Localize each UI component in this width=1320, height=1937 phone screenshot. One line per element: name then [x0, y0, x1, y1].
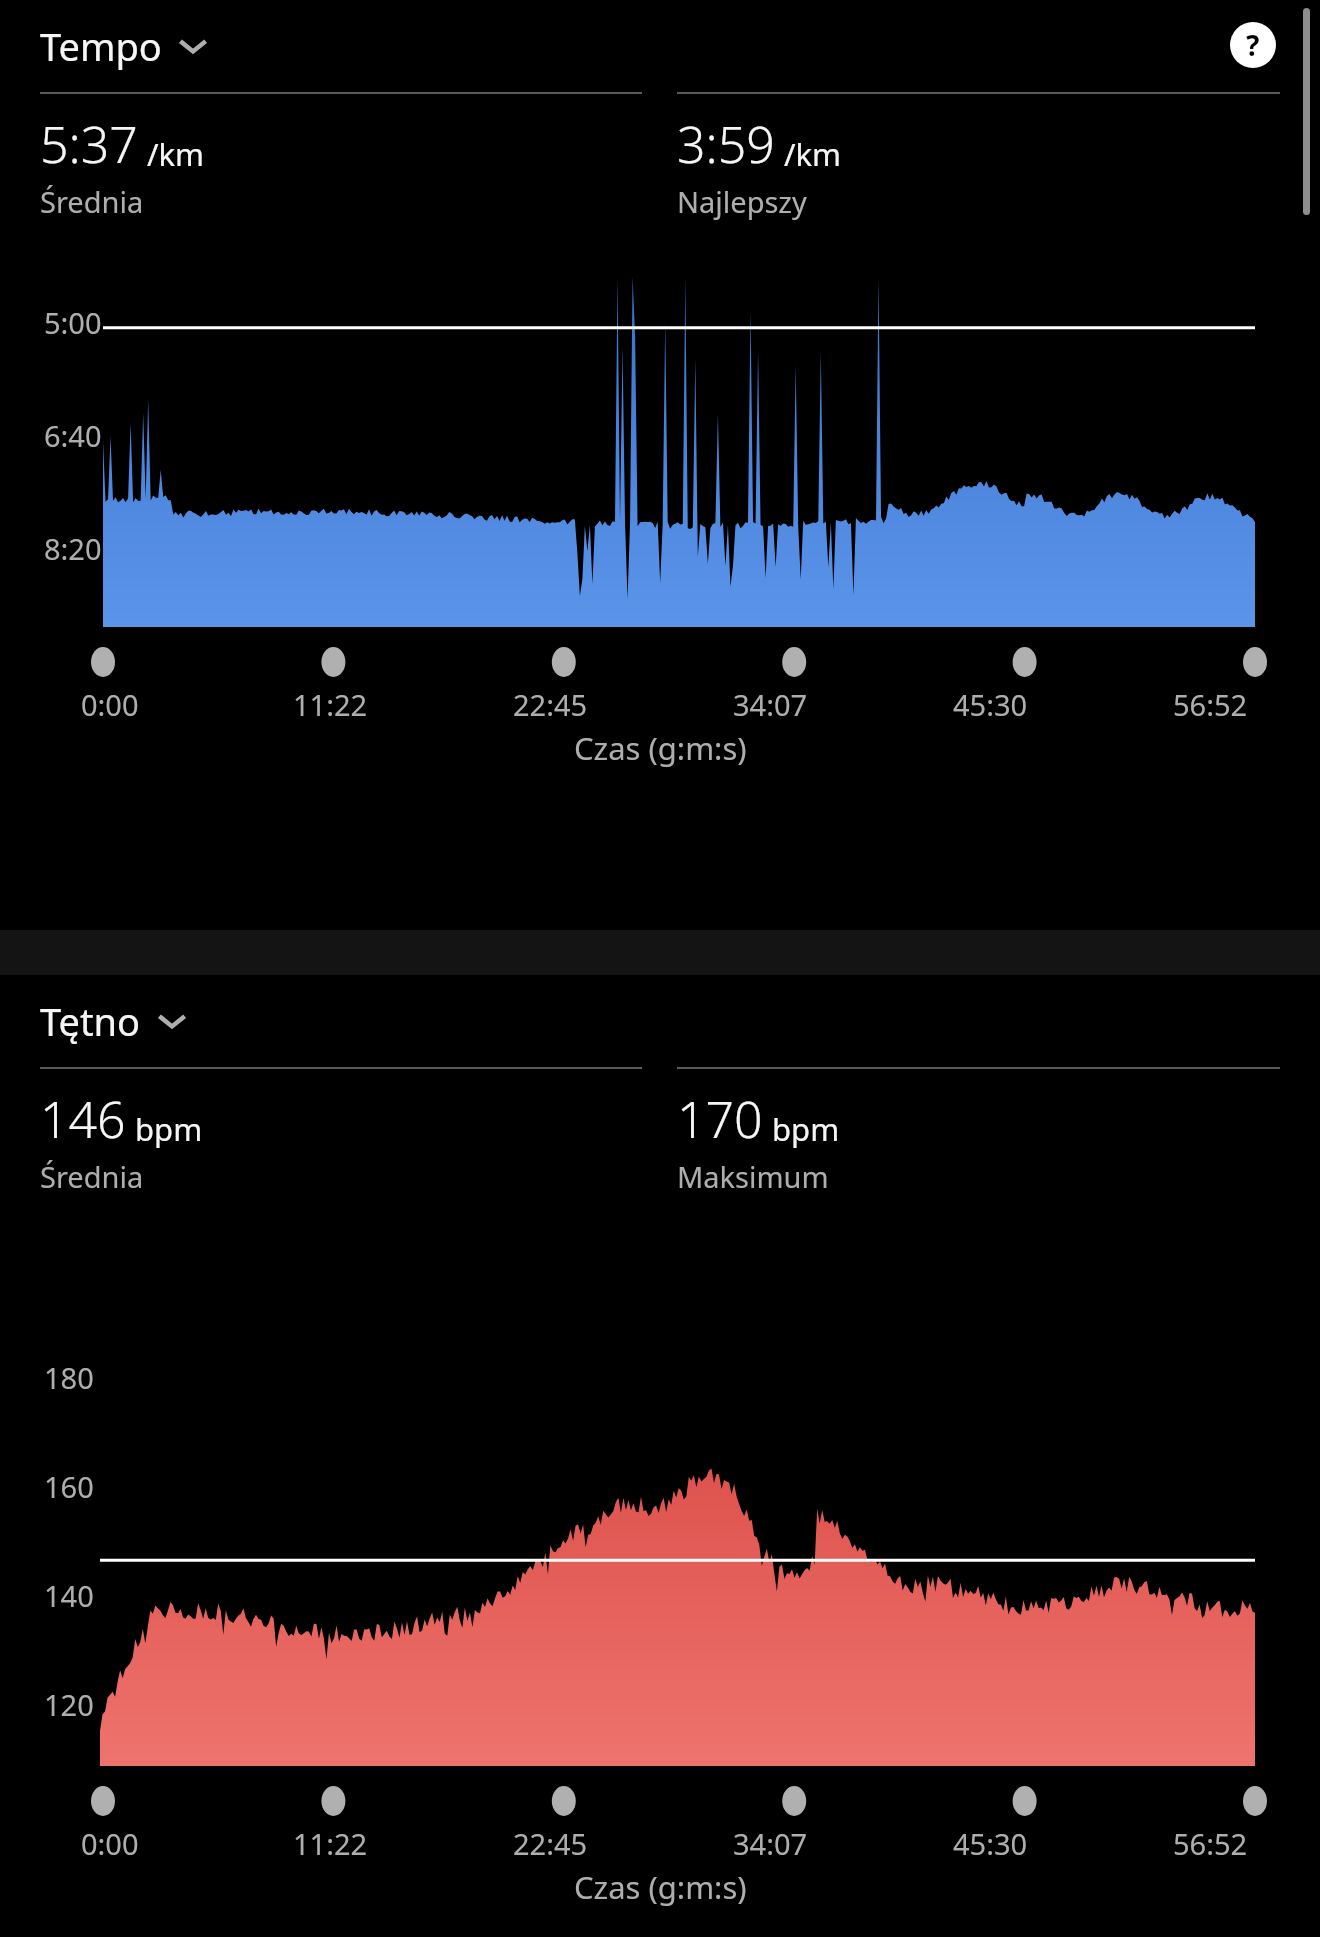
- staticText: 22:45: [513, 1824, 588, 1863]
- staticText: Czas (g:m:s): [574, 1866, 747, 1908]
- staticText: 146: [40, 1085, 126, 1153]
- staticText: 45:30: [953, 685, 1028, 724]
- staticText: 3:59: [677, 110, 775, 178]
- staticText: Maksimum: [677, 1157, 829, 1196]
- staticText: 34:07: [733, 685, 808, 724]
- staticText: Tętno: [40, 995, 141, 1047]
- staticText: 6:40: [44, 416, 102, 455]
- staticText: 180: [44, 1358, 94, 1397]
- staticText: Średnia: [40, 182, 144, 221]
- staticText: 56:52: [1173, 1824, 1248, 1863]
- staticText: 11:22: [293, 1824, 368, 1863]
- staticText: 0:00: [81, 685, 139, 724]
- staticText: 34:07: [733, 1824, 808, 1863]
- staticText: 8:20: [44, 529, 102, 568]
- staticText: Najlepszy: [677, 182, 807, 221]
- button[interactable]: Pomoc: [1230, 22, 1276, 68]
- button[interactable]: Tempo: [40, 16, 222, 76]
- staticText: 170: [677, 1085, 763, 1153]
- button[interactable]: Tętno: [40, 991, 201, 1051]
- button[interactable]: 146: [40, 1067, 642, 1196]
- button[interactable]: 170: [677, 1067, 1280, 1196]
- staticText: 0:00: [81, 1824, 139, 1863]
- staticText: 160: [44, 1467, 94, 1506]
- staticText: ?: [1246, 26, 1260, 64]
- staticText: /km: [784, 133, 842, 175]
- staticText: 45:30: [953, 1824, 1028, 1863]
- button[interactable]: 5:37: [40, 92, 642, 221]
- staticText: 11:22: [293, 685, 368, 724]
- button[interactable]: 3:59: [677, 92, 1280, 221]
- staticText: /km: [147, 133, 205, 175]
- staticText: 5:00: [44, 303, 102, 342]
- staticText: 56:52: [1173, 685, 1248, 724]
- staticText: Tempo: [40, 20, 162, 72]
- staticText: Średnia: [40, 1157, 144, 1196]
- staticText: Czas (g:m:s): [574, 727, 747, 769]
- staticText: bpm: [772, 1108, 840, 1150]
- staticText: 120: [44, 1685, 94, 1724]
- staticText: 5:37: [40, 110, 138, 178]
- staticText: 22:45: [513, 685, 588, 724]
- staticText: bpm: [135, 1108, 203, 1150]
- staticText: 140: [44, 1576, 94, 1615]
